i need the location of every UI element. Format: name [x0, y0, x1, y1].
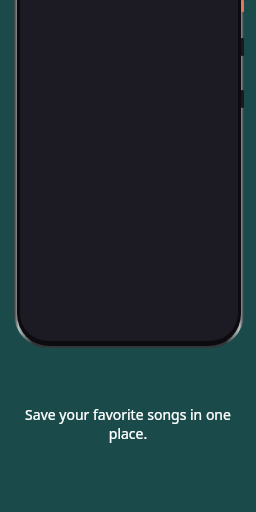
- other: Volume down: [241, 90, 244, 108]
- other: Volume up: [241, 38, 244, 56]
- staticText: Save your favorite songs in one place.: [20, 405, 236, 443]
- other: Power button: [241, 0, 244, 12]
